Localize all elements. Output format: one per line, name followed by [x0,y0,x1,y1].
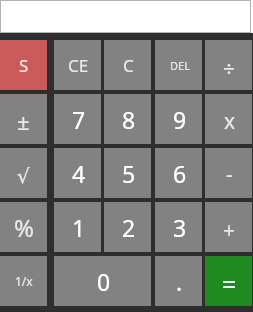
button[interactable]: Decimal point [155,256,202,306]
staticText: DEL [170,58,190,73]
staticText: 5 [122,158,136,189]
staticText: . [176,266,183,297]
staticText: S [19,54,29,77]
button[interactable]: Clear entry [54,40,101,90]
staticText: 1/x [15,273,33,289]
button[interactable]: Square root [0,148,47,198]
button[interactable]: Clear [104,40,151,90]
button[interactable]: Add [205,202,252,252]
button[interactable]: 0 [54,256,151,306]
button[interactable]: Delete [155,40,202,90]
staticText: CE [68,54,89,77]
button[interactable]: Plus minus [0,94,47,144]
button[interactable]: 5 [104,148,151,198]
staticText: 7 [72,104,86,135]
button[interactable]: 2 [104,202,151,252]
staticText: √ [17,164,30,187]
staticText: 8 [122,104,136,135]
staticText: 0 [97,266,111,297]
button[interactable]: 8 [104,94,151,144]
staticText: ± [17,106,30,136]
button[interactable]: Calculator display [0,0,251,33]
staticText: 4 [72,158,86,189]
button[interactable]: Divide [205,40,252,90]
button[interactable]: Multiply [205,94,252,144]
button[interactable]: Reciprocal [0,256,47,306]
button[interactable]: 4 [54,148,101,198]
staticText: + [223,216,236,245]
staticText: ÷ [223,55,236,84]
staticText: 1 [72,212,86,243]
button[interactable]: Equals [205,256,252,306]
button[interactable]: 9 [155,94,202,144]
button[interactable]: 7 [54,94,101,144]
button[interactable]: 3 [155,202,202,252]
staticText: % [14,211,34,244]
button[interactable]: Subtract [205,148,252,198]
staticText: 3 [173,212,187,243]
staticText: = [222,267,237,301]
button[interactable]: 6 [155,148,202,198]
button[interactable]: 1 [54,202,101,252]
button[interactable]: Clear all [0,40,47,90]
staticText: - [226,160,233,189]
staticText: 9 [173,104,187,135]
staticText: 6 [173,158,187,189]
staticText: x [224,107,236,136]
button[interactable]: Percent [0,202,47,252]
staticText: C [123,54,134,77]
staticText: 2 [122,212,136,243]
